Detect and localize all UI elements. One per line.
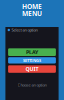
- staticText: Choose an option: [17, 82, 46, 88]
- staticText: HOME: [22, 2, 42, 11]
- staticText: PLAY: [26, 49, 38, 56]
- staticText: Select an option: [11, 27, 37, 33]
- staticText: MENU: [22, 9, 42, 18]
- staticText: QUIT: [25, 65, 38, 73]
- staticText: SETTINGS: [23, 58, 41, 63]
- button[interactable]: QUIT: [8, 65, 56, 73]
- button[interactable]: PLAY: [8, 48, 56, 56]
- button[interactable]: SETTINGS: [8, 57, 56, 63]
